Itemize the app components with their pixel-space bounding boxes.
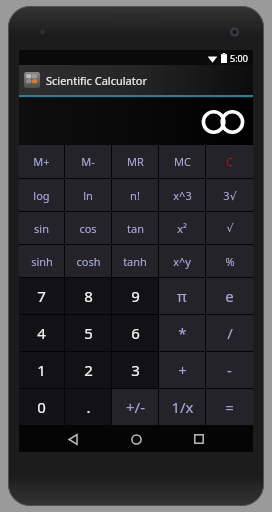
button[interactable]: log: [19, 179, 64, 211]
staticText: x^3: [173, 188, 192, 203]
button[interactable]: sin: [19, 212, 64, 244]
button[interactable]: Back: [56, 426, 90, 452]
button[interactable]: Recents: [182, 426, 216, 452]
button[interactable]: n!: [112, 179, 158, 211]
staticText: 9: [131, 286, 140, 306]
staticText: tan: [127, 221, 144, 236]
staticText: n!: [130, 188, 140, 203]
button[interactable]: 8: [65, 278, 111, 314]
button[interactable]: %: [206, 245, 253, 277]
staticText: -: [227, 360, 232, 380]
staticText: Scientific Calculator: [46, 73, 147, 88]
button[interactable]: cos: [65, 212, 111, 244]
staticText: C: [226, 154, 233, 169]
staticText: 8: [84, 286, 93, 306]
staticText: 4: [37, 323, 46, 343]
button[interactable]: x²: [159, 212, 205, 244]
staticText: sin: [34, 221, 49, 236]
staticText: sinh: [31, 254, 53, 269]
button[interactable]: 1/x: [159, 389, 205, 425]
button[interactable]: /: [206, 315, 253, 351]
staticText: =: [225, 397, 234, 417]
button[interactable]: x^3: [159, 179, 205, 211]
button[interactable]: 3√: [206, 179, 253, 211]
button[interactable]: 0: [19, 389, 64, 425]
button[interactable]: +/-: [112, 389, 158, 425]
staticText: 1/x: [171, 397, 194, 417]
staticText: 0: [37, 397, 46, 417]
staticText: 6: [131, 323, 140, 343]
staticText: %: [225, 254, 235, 269]
staticText: cos: [79, 221, 97, 236]
button[interactable]: √: [206, 212, 253, 244]
staticText: 3: [131, 360, 140, 380]
staticText: x²: [177, 221, 187, 236]
staticText: 7: [37, 286, 46, 306]
staticText: +/-: [126, 397, 145, 417]
staticText: *: [178, 323, 187, 343]
staticText: /: [227, 323, 233, 343]
button[interactable]: *: [159, 315, 205, 351]
button[interactable]: ln: [65, 179, 111, 211]
staticText: 2: [84, 360, 93, 380]
staticText: x^y: [173, 254, 191, 269]
other: App icon: [24, 72, 40, 88]
staticText: M-: [81, 154, 95, 169]
button[interactable]: MR: [112, 145, 158, 178]
button[interactable]: tan: [112, 212, 158, 244]
button[interactable]: x^y: [159, 245, 205, 277]
button[interactable]: M+: [19, 145, 64, 178]
staticText: log: [33, 188, 50, 203]
button[interactable]: 4: [19, 315, 64, 351]
staticText: cosh: [76, 254, 101, 269]
staticText: 5:00: [230, 52, 248, 64]
staticText: 3√: [223, 188, 237, 203]
other: Result infinity: [203, 110, 243, 134]
staticText: 1: [37, 360, 46, 380]
button[interactable]: 1: [19, 352, 64, 388]
button[interactable]: 3: [112, 352, 158, 388]
staticText: .: [86, 397, 91, 417]
button[interactable]: -: [206, 352, 253, 388]
button[interactable]: e: [206, 278, 253, 314]
button[interactable]: .: [65, 389, 111, 425]
staticText: MR: [127, 154, 144, 169]
button[interactable]: App icon: [19, 65, 253, 95]
button[interactable]: 9: [112, 278, 158, 314]
button[interactable]: 6: [112, 315, 158, 351]
button[interactable]: =: [206, 389, 253, 425]
staticText: π: [177, 286, 187, 306]
staticText: MC: [174, 154, 191, 169]
staticText: √: [226, 222, 234, 235]
staticText: +: [178, 360, 187, 380]
button[interactable]: 2: [65, 352, 111, 388]
button[interactable]: 7: [19, 278, 64, 314]
button[interactable]: 5: [65, 315, 111, 351]
button[interactable]: sinh: [19, 245, 64, 277]
staticText: M+: [33, 154, 50, 169]
button[interactable]: Result infinity: [19, 98, 253, 145]
staticText: ln: [83, 188, 93, 203]
button[interactable]: tanh: [112, 245, 158, 277]
button[interactable]: MC: [159, 145, 205, 178]
button[interactable]: Home: [119, 426, 153, 452]
staticText: tanh: [123, 254, 147, 269]
button[interactable]: C: [206, 145, 253, 178]
button[interactable]: π: [159, 278, 205, 314]
staticText: 5: [84, 323, 93, 343]
button[interactable]: cosh: [65, 245, 111, 277]
button[interactable]: M-: [65, 145, 111, 178]
button[interactable]: +: [159, 352, 205, 388]
staticText: e: [225, 286, 234, 306]
